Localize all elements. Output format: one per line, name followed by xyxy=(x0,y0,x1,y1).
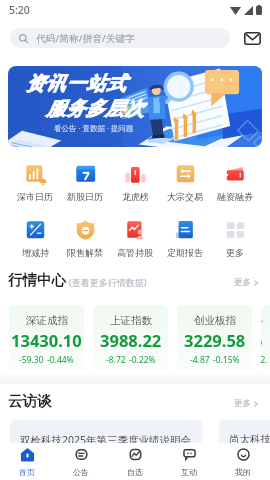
button[interactable]: 资讯一站式 xyxy=(8,66,262,147)
button[interactable]: 代码/简称/拼音/关键字 xyxy=(10,28,230,48)
staticText: 云访谈 xyxy=(8,392,52,410)
staticText: 龙虎榜 xyxy=(122,191,149,202)
staticText: 上证指数 xyxy=(110,314,152,327)
staticText: 深市日历 xyxy=(17,191,53,202)
staticText: 大宗交易 xyxy=(167,191,203,202)
button[interactable]: 深证成指 xyxy=(9,305,84,371)
button[interactable]: 深市日历 xyxy=(10,160,60,202)
button[interactable]: 定期报告 xyxy=(160,216,210,258)
staticText: 更多 xyxy=(226,247,244,258)
staticText: 深证成指 xyxy=(26,314,68,327)
staticText: -12.3 -0.2% xyxy=(261,354,270,366)
button[interactable]: 上证指数 xyxy=(93,305,168,371)
staticText: 限售解禁 xyxy=(67,247,103,258)
staticText: 公告 xyxy=(73,467,89,477)
staticText: 定期报告 xyxy=(167,247,203,258)
button[interactable]: 更多 xyxy=(210,216,260,258)
button[interactable]: 高管持股 xyxy=(110,216,160,258)
button[interactable]: 增减持 xyxy=(10,216,60,258)
button[interactable]: 双枪科技2025年第三季度业绩说明会 xyxy=(10,420,203,465)
staticText: 更多 xyxy=(234,398,251,409)
staticText: 新股日历 xyxy=(67,191,103,202)
button[interactable]: 尚太科技2025年度业绩说明会 xyxy=(219,420,270,465)
button[interactable]: 龙虎榜 xyxy=(110,160,160,202)
staticText: (查看更多行情数据) xyxy=(69,276,147,288)
staticText: 互动 xyxy=(181,467,197,477)
button[interactable]: Messages xyxy=(243,28,261,48)
staticText: -59.30 xyxy=(19,354,44,366)
staticText: 高管持股 xyxy=(117,247,153,258)
button[interactable]: 大宗交易 xyxy=(160,160,210,202)
staticText: 服务多层次 xyxy=(46,97,144,121)
staticText: 5:20 xyxy=(9,3,30,17)
staticText: 自选 xyxy=(127,467,143,477)
staticText: 双枪科技2025年第三季度业绩说明会 xyxy=(20,433,192,447)
staticText: 代码/简称/拼音/关键字 xyxy=(36,32,136,45)
staticText: -0.22% xyxy=(129,354,156,366)
staticText: 5438.1 xyxy=(261,329,270,351)
staticText: 增减持 xyxy=(22,247,49,258)
button[interactable]: 互动 xyxy=(162,443,216,480)
staticText: -0.44% xyxy=(47,354,74,366)
button[interactable]: 更多 xyxy=(234,398,259,410)
staticText: -0.15% xyxy=(213,354,240,366)
button[interactable]: 更多 xyxy=(234,277,259,289)
staticText: 尚太科技2025年度业绩说明会 xyxy=(229,433,270,446)
button[interactable]: 融资融券 xyxy=(210,160,260,202)
staticText: 首页 xyxy=(19,467,35,477)
staticText: 3988.22 xyxy=(100,329,162,351)
staticText: 看公告 · 查数据 · 提问题 xyxy=(54,123,134,133)
staticText: 科创50 xyxy=(261,314,270,327)
staticText: 3229.58 xyxy=(184,329,246,351)
staticText: 融资融券 xyxy=(217,191,253,202)
staticText: -4.87 xyxy=(190,354,210,366)
staticText: 创业板指 xyxy=(194,314,236,327)
button[interactable]: 我的 xyxy=(216,443,270,480)
staticText: 我的 xyxy=(235,467,251,477)
staticText: 资讯一站式 xyxy=(25,72,126,96)
staticText: 更多 xyxy=(234,277,251,288)
button[interactable]: 新股日历 xyxy=(60,160,110,202)
staticText: 13430.10 xyxy=(11,329,82,351)
button[interactable]: 创业板指 xyxy=(177,305,252,371)
button[interactable]: 限售解禁 xyxy=(60,216,110,258)
button[interactable]: 公告 xyxy=(54,443,108,480)
button[interactable]: 首页 xyxy=(0,443,54,480)
staticText: -8.72 xyxy=(106,354,126,366)
staticText: 行情中心 xyxy=(8,271,66,289)
button[interactable]: 自选 xyxy=(108,443,162,480)
button[interactable]: 科创50 xyxy=(261,305,270,371)
